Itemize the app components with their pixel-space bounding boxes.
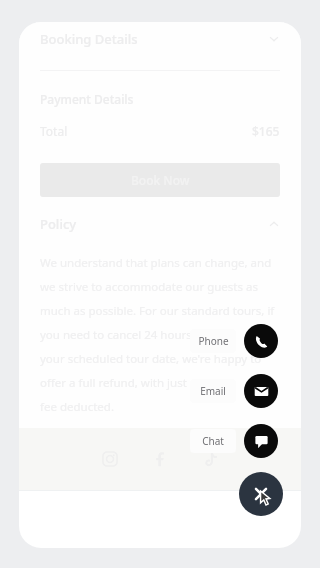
button[interactable]: Email [190,379,236,403]
button[interactable]: Call [244,324,278,358]
staticText: Policy [40,215,77,233]
staticText: Total [40,123,68,139]
button[interactable]: Email [244,374,278,408]
button[interactable]: TikTok [197,446,223,472]
button[interactable]: Chat [190,429,236,453]
staticText: offer a full refund, with just a small [40,375,228,391]
staticText: Booking Details [40,30,138,48]
staticText: Payment Details [40,91,134,107]
button[interactable]: Chat [244,424,278,458]
staticText: Email [200,384,226,398]
button[interactable]: Booking Details [19,22,301,56]
staticText: we strive to accommodate our guests as [40,279,258,295]
staticText: We understand that plans can change, and [40,255,272,271]
staticText: much as possible. For our standard tours… [40,303,275,319]
staticText: Chat [202,434,224,448]
button[interactable]: Phone [190,329,236,353]
button[interactable]: Close menu [239,472,283,516]
staticText: your scheduled tour date, we're happy to [40,351,262,367]
staticText: $165 [252,123,280,139]
staticText: you need to cancel 24 hours prior to [40,327,236,343]
staticText: fee deducted. [40,399,114,415]
staticText: Phone [198,334,229,348]
